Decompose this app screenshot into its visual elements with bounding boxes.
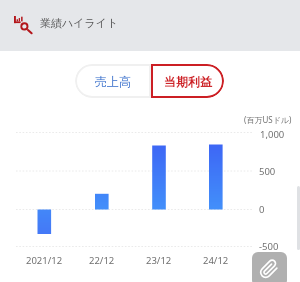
staticText: 業績ハイライト [40, 16, 119, 30]
button[interactable]: 売上高 [75, 64, 151, 98]
staticText: 24/12 [203, 254, 229, 267]
button[interactable]: 当期利益 [151, 64, 224, 98]
staticText: 売上高 [95, 74, 131, 89]
staticText: 22/12 [89, 254, 115, 267]
staticText: 500 [259, 165, 276, 178]
button[interactable]: Attach [252, 252, 287, 282]
staticText: 当期利益 [164, 74, 212, 89]
staticText: 2021/12 [26, 254, 63, 267]
staticText: (百万USドル) [244, 114, 292, 125]
staticText: 23/12 [146, 254, 172, 267]
staticText: 0 [259, 203, 265, 216]
staticText: -500 [259, 240, 279, 253]
staticText: 1,000 [260, 128, 285, 141]
